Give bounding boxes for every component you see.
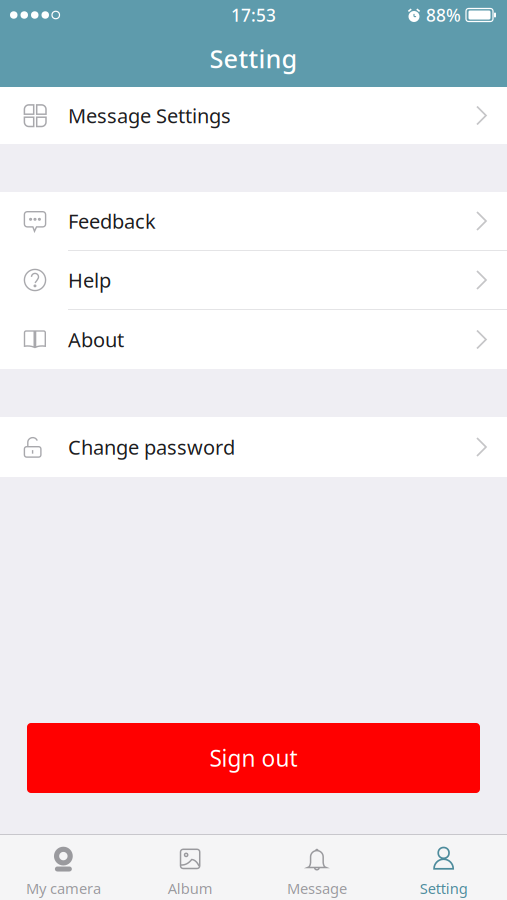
button[interactable]: Message bbox=[253, 834, 380, 900]
staticText: 17:53 bbox=[231, 3, 276, 26]
staticText: About bbox=[68, 326, 124, 353]
button[interactable]: Setting bbox=[380, 834, 507, 900]
button[interactable]: My camera bbox=[0, 834, 127, 900]
staticText: Setting bbox=[420, 878, 468, 898]
staticText: 88% bbox=[426, 3, 461, 26]
staticText: Setting bbox=[209, 42, 297, 75]
button[interactable]: Help bbox=[0, 251, 507, 310]
staticText: Sign out bbox=[209, 743, 297, 773]
button[interactable]: Album bbox=[127, 834, 254, 900]
staticText: Feedback bbox=[68, 208, 156, 234]
staticText: Message Settings bbox=[68, 102, 231, 129]
button[interactable]: Feedback bbox=[0, 192, 507, 251]
button[interactable]: About bbox=[0, 310, 507, 369]
staticText: Message bbox=[287, 878, 347, 898]
staticText: Help bbox=[68, 267, 111, 293]
staticText: My camera bbox=[26, 878, 101, 898]
button[interactable]: Change password bbox=[0, 417, 507, 477]
button[interactable]: Message Settings bbox=[0, 87, 507, 144]
staticText: Change password bbox=[68, 434, 235, 460]
staticText: Album bbox=[168, 878, 213, 898]
button[interactable]: Sign out bbox=[27, 723, 480, 793]
